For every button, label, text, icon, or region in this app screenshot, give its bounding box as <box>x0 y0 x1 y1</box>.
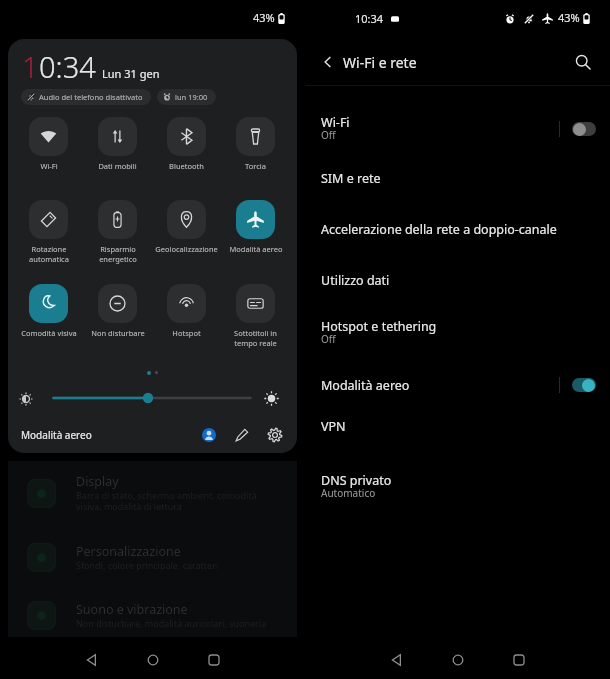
staticText: Torcia <box>245 161 266 171</box>
button[interactable]: Non disturbare <box>83 284 152 338</box>
button[interactable]: Recents <box>502 643 536 677</box>
button[interactable]: Account <box>198 424 220 446</box>
staticText: Dati mobili <box>98 161 137 171</box>
button[interactable]: Rotazione automatica <box>14 200 83 264</box>
staticText: Sfondi, colore principale, caratteri <box>76 559 219 571</box>
button[interactable]: Back <box>75 643 109 677</box>
staticText: Risparmio energetico <box>99 244 137 264</box>
staticText: lun 19:00 <box>175 92 208 102</box>
button[interactable]: Utilizzo dati <box>305 267 610 293</box>
button[interactable]: Modalità aereo <box>305 372 610 398</box>
button[interactable]: DNS privato <box>305 468 610 506</box>
staticText: Non disturbare <box>91 328 145 338</box>
staticText: Personalizzazione <box>76 543 181 560</box>
button[interactable]: Raise brightness <box>264 391 279 406</box>
staticText: Wi-Fi <box>321 114 350 131</box>
button[interactable]: Edit quick settings <box>231 424 253 446</box>
staticText: Sottotitoli in tempo reale <box>234 328 277 348</box>
staticText: DNS privato <box>321 472 392 489</box>
button[interactable]: Torcia <box>221 117 290 171</box>
staticText: Display <box>76 473 119 490</box>
button[interactable]: Wi-Fi <box>305 110 610 148</box>
button[interactable]: lun 19:00 <box>157 89 216 105</box>
staticText: Geolocalizzazione <box>155 244 218 254</box>
staticText: Rotazione automatica <box>29 244 69 264</box>
button[interactable]: Home <box>441 643 475 677</box>
button[interactable]: Comodità visiva <box>14 284 83 338</box>
staticText: Wi-Fi <box>40 161 58 171</box>
staticText: Modalità aereo <box>229 244 283 254</box>
button[interactable]: Display <box>8 471 297 515</box>
staticText: Audio del telefono disattivato <box>39 92 143 102</box>
button[interactable]: Settings <box>264 424 286 446</box>
button[interactable]: Sottotitoli in tempo reale <box>221 284 290 348</box>
button[interactable]: Back <box>315 49 341 75</box>
staticText: 10:34 <box>355 11 384 26</box>
button[interactable]: Wi-Fi <box>14 117 83 171</box>
staticText: Lun 31 gen <box>102 66 160 81</box>
staticText: 1 <box>22 47 39 86</box>
staticText: VPN <box>321 418 346 435</box>
button[interactable]: Search <box>570 49 596 75</box>
button[interactable]: Dati mobili <box>83 117 152 171</box>
button[interactable]: Audio del telefono disattivato <box>21 89 151 105</box>
button[interactable]: Bluetooth <box>152 117 221 171</box>
staticText: Non disturbare, modalità auricolari, suo… <box>76 617 267 629</box>
staticText: Modalità aereo <box>21 428 92 442</box>
staticText: Suono e vibrazione <box>76 601 188 618</box>
button[interactable]: Turn on <box>572 122 596 136</box>
staticText: Hotspot <box>172 328 201 338</box>
staticText: Barra di stato, schermo ambient, comodit… <box>76 489 257 513</box>
staticText: Comodità visiva <box>21 328 77 338</box>
button[interactable]: Personalizzazione <box>8 535 297 579</box>
button[interactable]: Lower brightness <box>19 392 33 406</box>
staticText: Bluetooth <box>169 161 204 171</box>
button[interactable]: SIM e rete <box>305 165 610 191</box>
staticText: SIM e rete <box>321 170 381 187</box>
button[interactable]: VPN <box>305 413 610 439</box>
button[interactable]: Brightness <box>52 390 252 406</box>
button[interactable]: Back <box>380 643 414 677</box>
staticText: Accelerazione della rete a doppio-canale <box>321 221 557 238</box>
button[interactable]: Turn off <box>572 378 596 392</box>
staticText: Hotspot e tethering <box>321 318 437 335</box>
staticText: 0:34 <box>39 47 96 86</box>
staticText: 43% <box>558 10 580 25</box>
staticText: Modalità aereo <box>321 377 410 394</box>
button[interactable]: Risparmio energetico <box>83 200 152 264</box>
button[interactable]: Suono e vibrazione <box>8 593 297 637</box>
button[interactable]: Accelerazione della rete a doppio-canale <box>305 216 610 242</box>
button[interactable]: Home <box>136 643 170 677</box>
staticText: Automatico <box>321 486 376 500</box>
button[interactable]: Modalità aereo <box>221 200 290 254</box>
staticText: Off <box>321 128 336 142</box>
button[interactable]: Recents <box>197 643 231 677</box>
staticText: Wi-Fi e rete <box>343 53 417 72</box>
staticText: Off <box>321 332 336 346</box>
button[interactable]: Geolocalizzazione <box>152 200 221 254</box>
staticText: Utilizzo dati <box>321 272 390 289</box>
button[interactable]: Hotspot e tethering <box>305 314 610 352</box>
staticText: 43% <box>253 10 275 25</box>
button[interactable]: Hotspot <box>152 284 221 338</box>
